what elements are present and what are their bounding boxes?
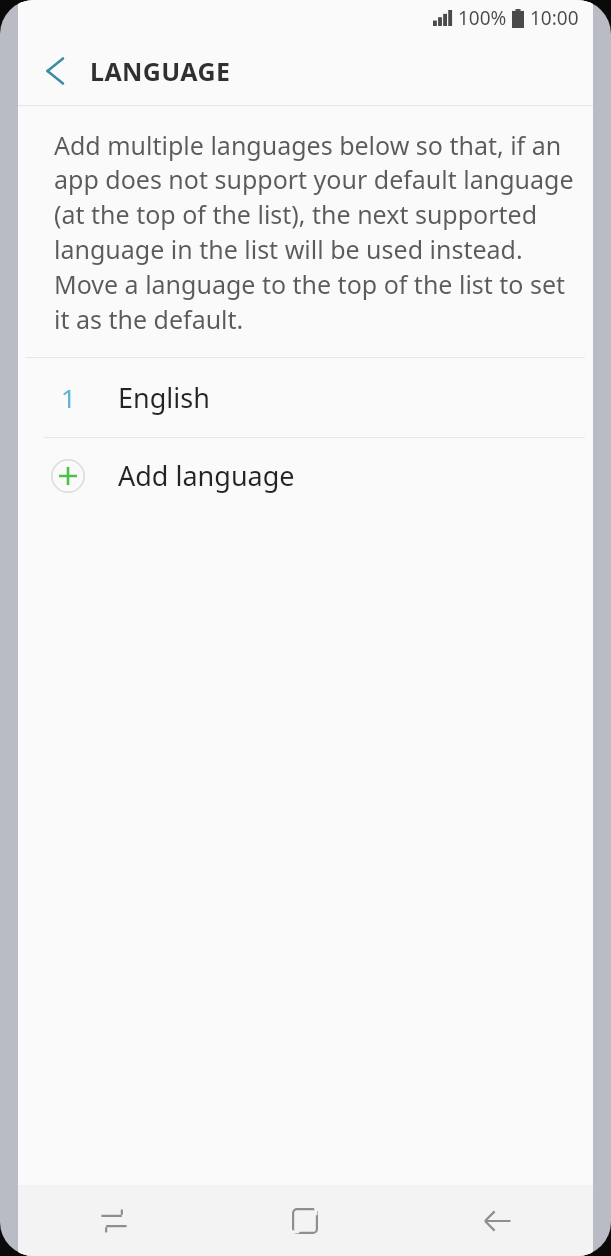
staticText: 1 <box>61 380 76 415</box>
staticText: English <box>118 379 210 416</box>
staticText: Add multiple languages below so that, if… <box>54 128 577 337</box>
staticText: 100% <box>458 5 507 31</box>
staticText: LANGUAGE <box>90 54 231 88</box>
button[interactable]: Home <box>209 1185 401 1256</box>
button[interactable]: Back <box>401 1185 593 1256</box>
button[interactable]: Back <box>28 45 80 97</box>
staticText: Add language <box>118 457 295 494</box>
button[interactable]: Recents <box>18 1185 209 1256</box>
button[interactable]: 1 <box>18 358 593 437</box>
button[interactable]: Add language <box>18 438 593 513</box>
staticText: 10:00 <box>530 5 579 31</box>
